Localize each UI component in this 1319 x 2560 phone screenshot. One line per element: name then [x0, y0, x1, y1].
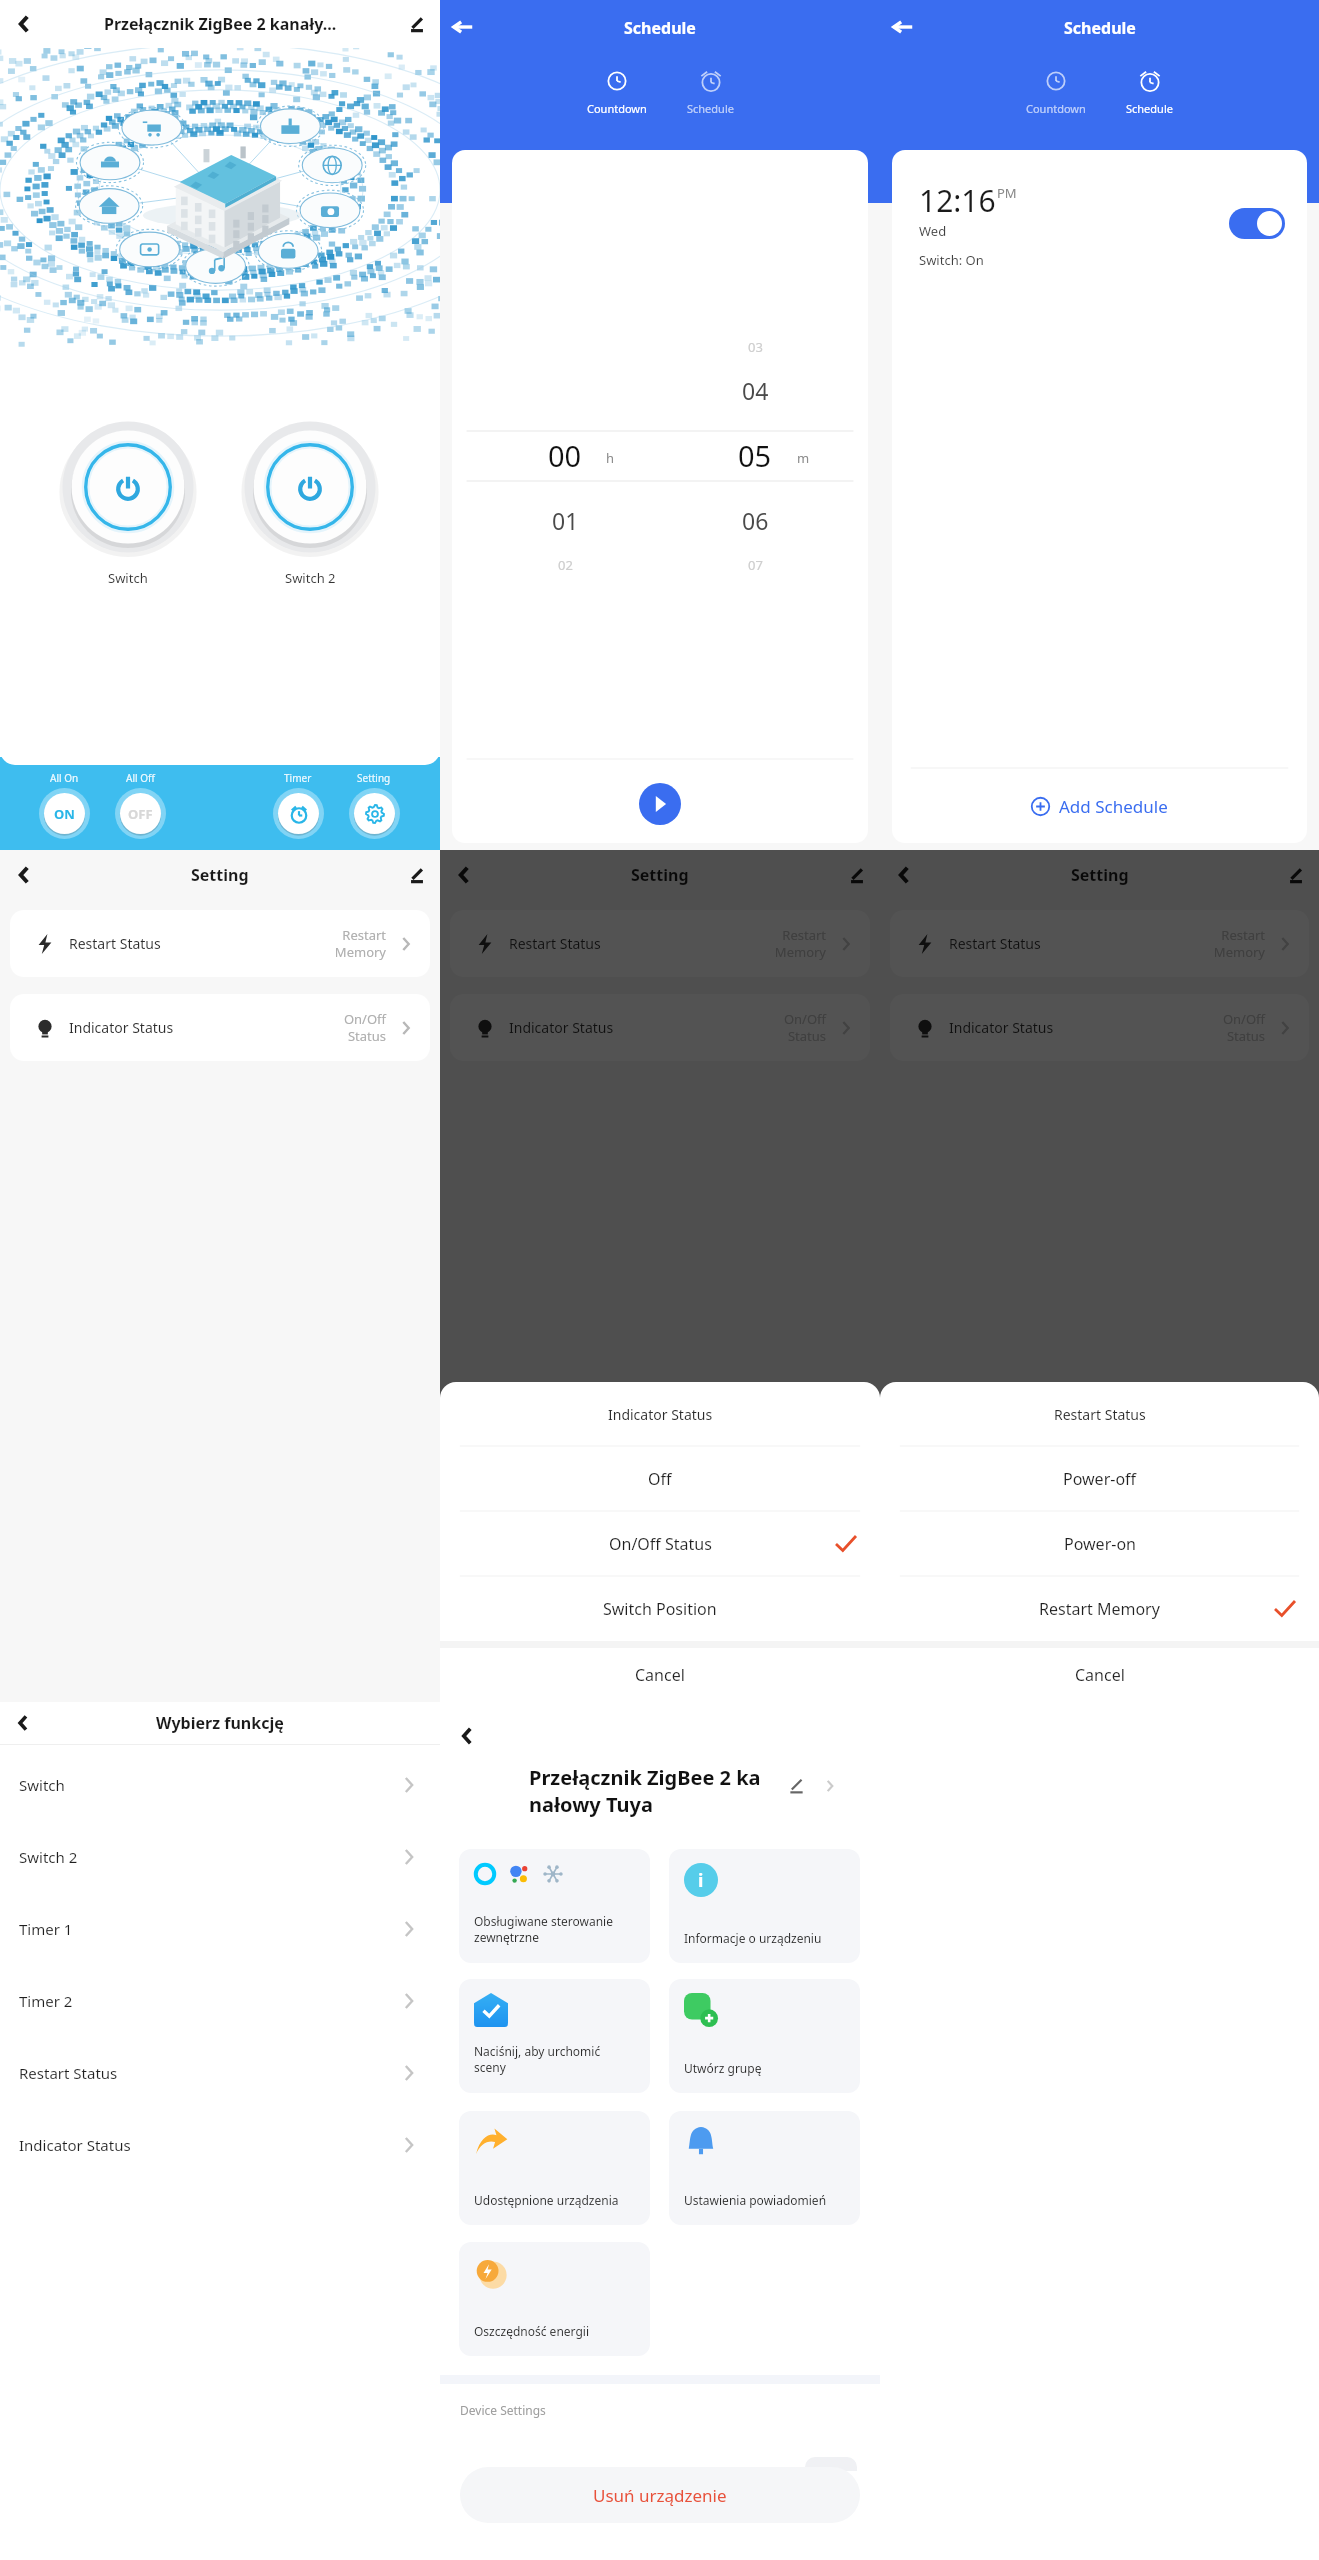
- button[interactable]: Edit: [394, 852, 440, 898]
- staticText: Obsługiwane sterowanie zewnętrzne: [474, 1913, 622, 1946]
- staticText: Naciśnij, aby urchomić sceny: [474, 2043, 622, 2076]
- staticText: PM: [997, 184, 1017, 202]
- button[interactable]: Obsługiwane sterowanie zewnętrzne: [459, 1849, 650, 1963]
- button[interactable]: Naciśnij, aby urchomić sceny: [459, 1979, 650, 2093]
- staticText: Schedule: [1064, 17, 1136, 39]
- button[interactable]: Back: [0, 1702, 44, 1744]
- staticText: Cancel: [1075, 1664, 1125, 1686]
- button[interactable]: Schedule: [1120, 69, 1179, 116]
- button[interactable]: Restart Memory: [880, 1577, 1319, 1641]
- staticText: OFF: [128, 805, 153, 823]
- button[interactable]: Restart Status: [450, 910, 870, 977]
- staticText: Ustawienia powiadomień: [684, 2192, 827, 2208]
- button[interactable]: Oszczędność energii: [459, 2242, 650, 2356]
- staticText: Restart Status: [1054, 1405, 1146, 1424]
- staticText: Indicator Status: [949, 1018, 1222, 1037]
- button[interactable]: Restart Status: [890, 910, 1309, 977]
- staticText: Setting: [191, 864, 249, 886]
- staticText: Restart Memory: [774, 926, 826, 961]
- button[interactable]: Utwórz grupę: [669, 1979, 860, 2093]
- button[interactable]: Start countdown: [639, 783, 681, 825]
- button[interactable]: Toggle Switch: [58, 417, 198, 557]
- button[interactable]: Usuń urządzenie: [460, 2467, 860, 2523]
- staticText: Udostępnione urządzenia: [474, 2192, 619, 2208]
- button[interactable]: Timer: [260, 771, 336, 839]
- staticText: Switch 2: [19, 1847, 398, 1867]
- staticText: Schedule: [1126, 101, 1173, 116]
- button[interactable]: Indicator Status: [0, 2109, 440, 2181]
- staticText: Setting: [631, 864, 689, 886]
- staticText: Setting: [357, 771, 391, 785]
- staticText: Add Schedule: [1059, 795, 1168, 818]
- staticText: On/Off Status: [1222, 1010, 1265, 1045]
- staticText: Countdown: [1026, 101, 1086, 116]
- button[interactable]: Edit: [394, 1, 440, 47]
- button[interactable]: Power-on: [880, 1512, 1319, 1576]
- button[interactable]: Indicator Status: [10, 994, 430, 1061]
- button[interactable]: Restart Status: [10, 910, 430, 977]
- staticText: h: [606, 449, 615, 467]
- button[interactable]: Schedule: [681, 69, 740, 116]
- button[interactable]: Back: [0, 1, 46, 47]
- staticText: On/Off Status: [783, 1010, 826, 1045]
- button[interactable]: Toggle Switch 2: [240, 417, 380, 557]
- staticText: 00: [548, 436, 582, 475]
- staticText: Wybierz funkcję: [156, 1712, 284, 1734]
- button[interactable]: Back: [880, 852, 926, 898]
- staticText: i: [698, 1868, 704, 1893]
- button[interactable]: Back: [440, 852, 486, 898]
- button[interactable]: Timer 1: [0, 1893, 440, 1965]
- staticText: Schedule: [687, 101, 734, 116]
- button[interactable]: Ustawienia powiadomień: [669, 2111, 860, 2225]
- button[interactable]: i: [669, 1849, 860, 1963]
- staticText: 06: [742, 505, 769, 536]
- staticText: Switch: [19, 1775, 398, 1795]
- button[interactable]: Indicator Status: [890, 994, 1309, 1061]
- staticText: Off: [648, 1468, 672, 1490]
- staticText: Usuń urządzenie: [593, 2484, 727, 2507]
- button[interactable]: Switch: [0, 1749, 440, 1821]
- button[interactable]: Countdown: [581, 69, 653, 116]
- button[interactable]: Indicator Status: [450, 994, 870, 1061]
- button[interactable]: Cancel: [440, 1648, 880, 1702]
- button[interactable]: Edit: [834, 852, 880, 898]
- staticText: ON: [54, 805, 75, 823]
- staticText: Utwórz grupę: [684, 2060, 762, 2076]
- staticText: 03: [748, 338, 763, 356]
- button[interactable]: All On: [27, 771, 102, 839]
- button[interactable]: Udostępnione urządzenia: [459, 2111, 650, 2225]
- button[interactable]: Back: [444, 1714, 488, 1758]
- staticText: Switch Position: [603, 1598, 717, 1620]
- button[interactable]: Countdown: [1020, 69, 1092, 116]
- staticText: Indicator Status: [19, 2135, 398, 2155]
- button[interactable]: Power-off: [880, 1447, 1319, 1511]
- button[interactable]: Timer 2: [0, 1965, 440, 2037]
- button[interactable]: Setting: [336, 771, 412, 839]
- button[interactable]: Switch Position: [440, 1577, 880, 1641]
- button[interactable]: Switch 2: [0, 1821, 440, 1893]
- button[interactable]: Przełącznik ZigBee 2 ka nałowy Tuya: [440, 1764, 880, 1818]
- staticText: Wed: [919, 222, 947, 240]
- button[interactable]: Add Schedule: [892, 769, 1307, 843]
- staticText: All On: [50, 771, 79, 785]
- staticText: Setting: [1071, 864, 1129, 886]
- staticText: Indicator Status: [69, 1018, 343, 1037]
- staticText: Timer: [284, 771, 312, 785]
- button[interactable]: All Off: [102, 771, 178, 839]
- button[interactable]: Off: [440, 1447, 880, 1511]
- staticText: Indicator Status: [509, 1018, 783, 1037]
- staticText: Restart Status: [949, 934, 1213, 953]
- staticText: All Off: [126, 771, 155, 785]
- button[interactable]: Back: [0, 852, 46, 898]
- staticText: Przełącznik ZigBee 2 kanały...: [104, 13, 337, 35]
- button[interactable]: Schedule enabled toggle: [1229, 208, 1285, 239]
- button[interactable]: On/Off Status: [440, 1512, 880, 1576]
- staticText: Indicator Status: [608, 1405, 713, 1424]
- staticText: Cancel: [635, 1664, 685, 1686]
- button[interactable]: Back: [440, 4, 486, 50]
- button[interactable]: Restart Status: [0, 2037, 440, 2109]
- button[interactable]: Edit: [1273, 852, 1319, 898]
- button[interactable]: Back: [880, 4, 926, 50]
- staticText: Restart Memory: [334, 926, 386, 961]
- button[interactable]: Cancel: [880, 1648, 1319, 1702]
